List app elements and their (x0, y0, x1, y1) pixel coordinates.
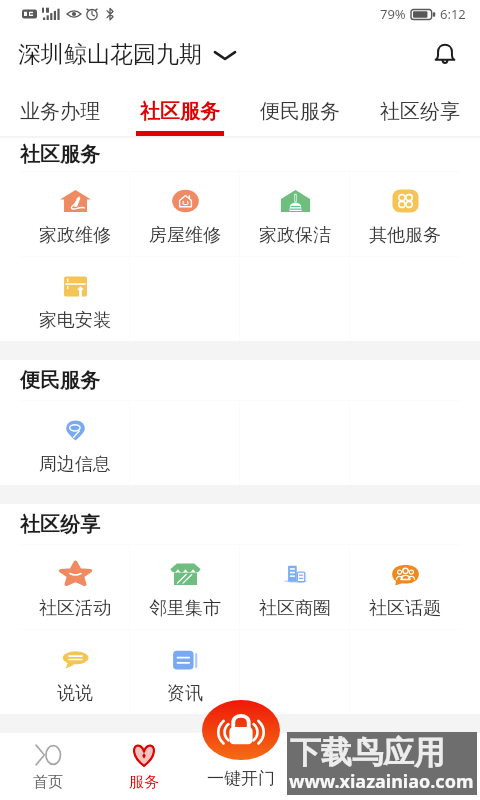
staticText: 便民服务 (20, 368, 100, 393)
staticText: 其他服务 (369, 224, 441, 247)
button[interactable]: 说说 (20, 629, 130, 714)
button[interactable]: 社区话题 (350, 544, 460, 629)
button[interactable]: 家政保洁 (240, 171, 350, 256)
button[interactable]: 周边信息 (20, 400, 130, 485)
staticText: www.xiazainiao.com (289, 769, 474, 794)
button[interactable]: 一键开门 (202, 700, 280, 760)
staticText: 社区活动 (39, 597, 111, 620)
button[interactable]: 社区商圈 (240, 544, 350, 629)
staticText: 邻里集市 (149, 597, 221, 620)
button[interactable]: 服务 (96, 733, 192, 800)
button[interactable]: 深圳鲸山花园九期 (18, 40, 237, 69)
button[interactable]: Notifications (428, 37, 462, 71)
staticText: 社区话题 (369, 597, 441, 620)
staticText: 便民服务 (260, 99, 340, 124)
button[interactable]: 社区服务 (120, 80, 240, 136)
staticText: 服务 (129, 773, 159, 792)
button[interactable]: 家政维修 (20, 171, 130, 256)
staticText: 资讯 (167, 682, 203, 705)
button[interactable]: 业务办理 (0, 80, 120, 136)
staticText: 6:12 (440, 5, 466, 23)
staticText: 家电安装 (39, 309, 111, 332)
button[interactable]: 其他服务 (350, 171, 460, 256)
staticText: 79% (380, 5, 406, 23)
staticText: 说说 (57, 682, 93, 705)
button[interactable]: 房屋维修 (130, 171, 240, 256)
button[interactable]: 家电安装 (20, 256, 130, 341)
staticText: 家政保洁 (259, 224, 331, 247)
staticText: 业务办理 (20, 99, 100, 124)
staticText: 下载鸟应用 (290, 733, 445, 772)
button[interactable]: 资讯 (130, 629, 240, 714)
staticText: 一键开门 (207, 768, 275, 789)
staticText: 社区纷享 (380, 99, 460, 124)
staticText: 社区纷享 (20, 512, 100, 537)
staticText: 周边信息 (39, 453, 111, 476)
button[interactable]: 邻里集市 (130, 544, 240, 629)
staticText: 房屋维修 (149, 224, 221, 247)
button[interactable]: 便民服务 (240, 80, 360, 136)
staticText: 首页 (33, 773, 63, 792)
button[interactable]: 首页 (0, 733, 96, 800)
staticText: 社区服务 (140, 99, 220, 124)
staticText: 社区商圈 (259, 597, 331, 620)
staticText: 深圳鲸山花园九期 (18, 40, 202, 69)
staticText: 社区服务 (20, 142, 100, 167)
staticText: 家政维修 (39, 224, 111, 247)
button[interactable]: 社区纷享 (360, 80, 480, 136)
button[interactable]: 社区活动 (20, 544, 130, 629)
